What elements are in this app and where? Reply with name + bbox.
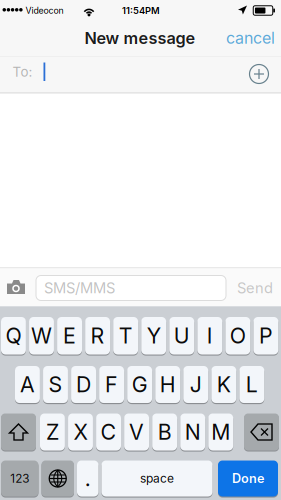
staticText: F: [105, 372, 118, 397]
button[interactable]: N: [180, 413, 205, 450]
button[interactable]: Send: [225, 276, 281, 300]
button[interactable]: space: [101, 460, 212, 496]
staticText: E: [63, 323, 76, 349]
staticText: W: [31, 323, 52, 349]
button[interactable]: Y: [141, 317, 166, 354]
staticText: cancel: [226, 28, 275, 48]
staticText: C: [100, 419, 116, 445]
staticText: B: [158, 419, 172, 445]
staticText: S: [48, 372, 62, 397]
button[interactable]: L: [239, 366, 264, 403]
button[interactable]: G: [127, 366, 152, 403]
button[interactable]: SMS/MMS: [36, 275, 226, 300]
button[interactable]: 123: [1, 460, 38, 496]
button[interactable]: Add contact: [249, 64, 268, 83]
staticText: H: [160, 372, 176, 397]
staticText: A: [20, 372, 35, 397]
staticText: space: [140, 471, 174, 486]
staticText: N: [185, 419, 201, 445]
staticText: P: [259, 323, 273, 349]
button[interactable]: E: [57, 317, 82, 354]
button[interactable]: K: [211, 366, 236, 403]
button[interactable]: S: [43, 366, 68, 403]
button[interactable]: X: [68, 413, 93, 450]
button[interactable]: A: [15, 366, 40, 403]
button[interactable]: Z: [40, 413, 65, 450]
button[interactable]: H: [155, 366, 180, 403]
button[interactable]: Delete: [244, 413, 279, 450]
staticText: G: [132, 372, 148, 397]
button[interactable]: U: [169, 317, 194, 354]
staticText: D: [76, 372, 91, 397]
button[interactable]: P: [253, 317, 278, 354]
button[interactable]: cancel: [212, 26, 280, 50]
button[interactable]: .: [77, 460, 98, 496]
staticText: Y: [147, 323, 161, 349]
button[interactable]: V: [124, 413, 149, 450]
button[interactable]: C: [96, 413, 121, 450]
staticText: K: [217, 372, 231, 397]
button[interactable]: F: [99, 366, 124, 403]
button[interactable]: Next keyboard: [41, 460, 74, 496]
button[interactable]: J: [183, 366, 208, 403]
staticText: R: [91, 323, 105, 349]
button[interactable]: I: [197, 317, 222, 354]
staticText: Q: [5, 323, 21, 349]
button[interactable]: T: [113, 317, 138, 354]
staticText: 11:54PM: [122, 5, 160, 16]
staticText: Send: [237, 279, 273, 297]
staticText: L: [246, 372, 258, 397]
staticText: X: [73, 419, 87, 445]
button[interactable]: M: [208, 413, 233, 450]
staticText: T: [119, 323, 133, 349]
staticText: SMS/MMS: [44, 279, 115, 297]
staticText: O: [230, 323, 246, 349]
staticText: Z: [46, 419, 59, 445]
staticText: Videocon: [26, 5, 64, 16]
button[interactable]: B: [152, 413, 177, 450]
button[interactable]: R: [85, 317, 110, 354]
button[interactable]: Shift: [1, 413, 36, 450]
button[interactable]: Done: [218, 460, 278, 496]
staticText: V: [129, 419, 144, 445]
staticText: Done: [232, 471, 264, 486]
staticText: .: [85, 466, 91, 491]
staticText: New message: [84, 28, 195, 48]
staticText: I: [207, 323, 213, 349]
staticText: U: [174, 323, 190, 349]
button[interactable]: W: [29, 317, 54, 354]
staticText: M: [211, 419, 230, 445]
staticText: J: [190, 372, 202, 397]
button[interactable]: Camera: [7, 280, 25, 294]
staticText: To:: [12, 64, 32, 80]
button[interactable]: O: [225, 317, 250, 354]
staticText: 123: [10, 471, 29, 486]
button[interactable]: Q: [1, 317, 26, 354]
button[interactable]: D: [71, 366, 96, 403]
